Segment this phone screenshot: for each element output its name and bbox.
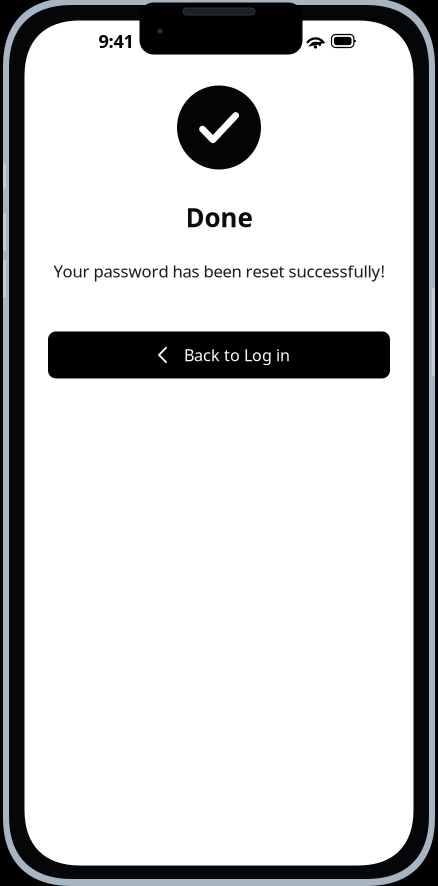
staticText: Back to Log in <box>184 344 290 366</box>
staticText: Done <box>185 199 252 235</box>
staticText: Your password has been reset successfull… <box>53 260 384 282</box>
button[interactable]: Back to Log in <box>48 331 390 378</box>
staticText: 9:41 <box>98 29 133 53</box>
